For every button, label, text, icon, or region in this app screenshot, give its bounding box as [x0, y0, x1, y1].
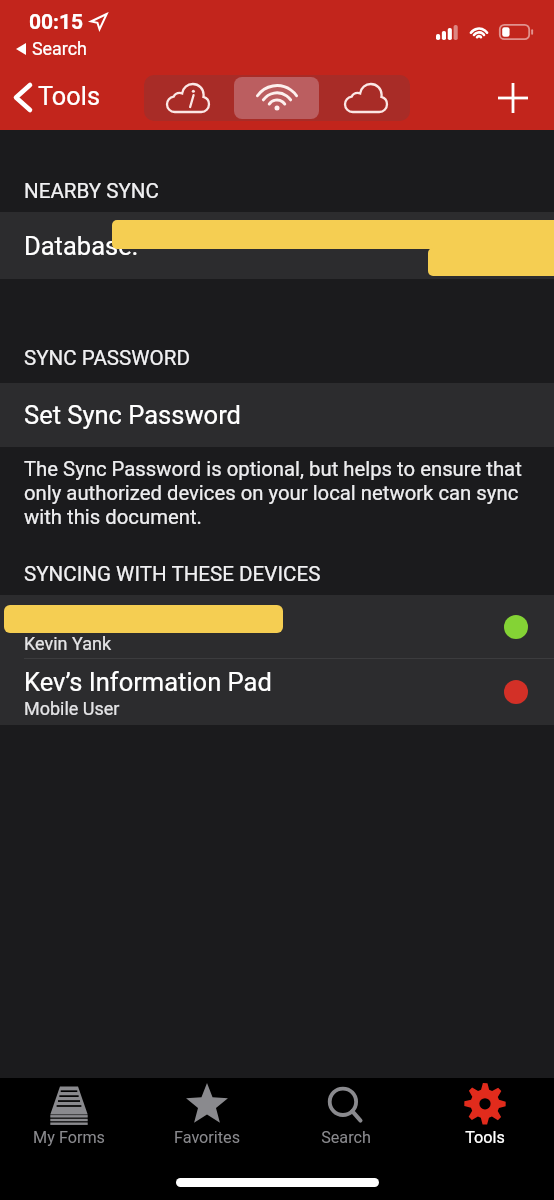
staticText: 00:15 [29, 10, 84, 35]
button[interactable]: Kev’s Information Pad [0, 659, 554, 725]
staticText: Search [32, 38, 87, 59]
button[interactable]: Tools [14, 82, 100, 112]
button[interactable]: Kevin Yank [0, 595, 554, 659]
button[interactable]: Nearby sync [234, 77, 319, 119]
button[interactable]: Add [491, 76, 535, 120]
staticText: NEARBY SYNC [24, 179, 159, 203]
button[interactable]: Sync info [146, 77, 230, 119]
staticText: My Forms [33, 1128, 105, 1147]
button[interactable]: Tools [415, 1078, 554, 1160]
staticText: Database: [24, 231, 138, 261]
staticText: Mobile User [24, 698, 120, 719]
staticText: Kevin Yank [24, 633, 112, 654]
staticText: The Sync Password is optional, but helps… [24, 457, 536, 529]
staticText: SYNC PASSWORD [24, 346, 190, 370]
button[interactable]: Favorites [138, 1078, 276, 1160]
button[interactable]: Set Sync Password [0, 383, 554, 447]
staticText: Set Sync Password [24, 400, 241, 430]
button[interactable]: Cloud sync [323, 77, 408, 119]
staticText: Tools [38, 82, 100, 112]
staticText: SYNCING WITH THESE DEVICES [24, 562, 321, 586]
staticText: Search [321, 1128, 371, 1147]
button[interactable]: Search [276, 1078, 415, 1160]
staticText: Tools [465, 1128, 505, 1147]
button[interactable]: Database: [0, 212, 554, 279]
staticText: Kev’s Information Pad [24, 667, 272, 697]
button[interactable]: My Forms [0, 1078, 138, 1160]
staticText: Favorites [174, 1128, 240, 1147]
